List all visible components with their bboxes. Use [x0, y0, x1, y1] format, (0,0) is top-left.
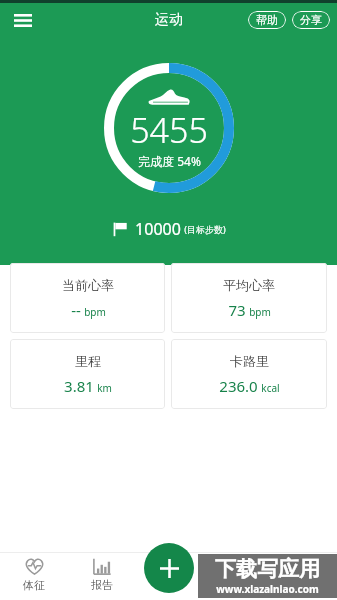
button[interactable]: Menu — [7, 4, 39, 36]
staticText: 睡眠 — [293, 578, 315, 592]
staticText: 运动 — [226, 578, 248, 592]
staticText: 236.0 — [219, 376, 258, 396]
staticText: 完成度 54% — [138, 153, 201, 169]
staticText: -- — [71, 300, 81, 320]
button[interactable]: 体征 — [0, 552, 68, 600]
staticText: 卡路里 — [230, 353, 269, 369]
button[interactable]: 报告 — [68, 552, 136, 600]
staticText: 平均心率 — [223, 277, 275, 293]
staticText: 当前心率 — [62, 277, 114, 293]
staticText: (目标步数) — [184, 223, 226, 235]
button[interactable]: 平均心率 — [171, 263, 327, 333]
staticText: bpm — [84, 305, 106, 319]
staticText: 运动 — [155, 11, 183, 29]
staticText: 5455 — [130, 107, 208, 153]
staticText: bpm — [249, 305, 271, 319]
staticText: 73 — [228, 300, 246, 320]
button[interactable]: 卡路里 — [171, 339, 327, 409]
staticText: kcal — [261, 381, 280, 395]
button[interactable]: 当前心率 — [10, 263, 165, 333]
staticText: 分享 — [300, 13, 322, 27]
button[interactable]: 睡眠 — [270, 552, 337, 600]
staticText: 下载写应用 — [215, 556, 320, 582]
button[interactable]: 运动 — [203, 552, 270, 600]
staticText: 3.81 — [64, 376, 94, 396]
button[interactable]: Add — [144, 543, 194, 593]
staticText: 体征 — [23, 578, 45, 592]
button[interactable]: 分享 — [292, 11, 330, 29]
staticText: km — [97, 381, 112, 395]
staticText: 帮助 — [256, 13, 278, 27]
staticText: 里程 — [75, 353, 101, 369]
button[interactable]: 里程 — [10, 339, 165, 409]
staticText: www.xlazalnlao.com — [216, 582, 319, 596]
button[interactable]: 帮助 — [248, 11, 286, 29]
staticText: 报告 — [91, 578, 113, 592]
staticText: 10000 — [135, 218, 181, 240]
